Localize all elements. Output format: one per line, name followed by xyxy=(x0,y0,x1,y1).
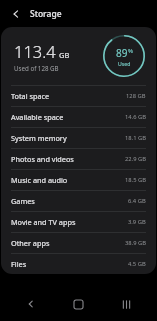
staticText: 18.1 GB xyxy=(125,134,146,142)
staticText: GB xyxy=(59,50,70,60)
staticText: 89 xyxy=(116,46,128,60)
button[interactable]: Movie and TV apps xyxy=(1,212,156,232)
staticText: 4.5 GB xyxy=(128,260,146,268)
staticText: System memory xyxy=(11,133,125,143)
button[interactable]: Back xyxy=(18,291,44,317)
staticText: Games xyxy=(11,196,128,206)
button[interactable]: Photos and videos xyxy=(1,149,156,169)
staticText: Movie and TV apps xyxy=(11,217,128,227)
staticText: 38.9 GB xyxy=(125,239,146,247)
staticText: 22.9 GB xyxy=(125,155,146,163)
staticText: 113.4 xyxy=(14,40,56,62)
staticText: 6.4 GB xyxy=(128,197,146,205)
button[interactable]: Other apps xyxy=(1,233,156,253)
staticText: Used xyxy=(118,60,131,67)
staticText: 18.5 GB xyxy=(125,176,146,184)
staticText: 3.9 GB xyxy=(128,218,146,226)
button[interactable]: Total space xyxy=(1,86,156,106)
staticText: Photos and videos xyxy=(11,154,125,164)
staticText: Used of 128 GB xyxy=(14,64,59,72)
staticText: Available space xyxy=(11,112,125,122)
staticText: Music and audio xyxy=(11,175,125,185)
button[interactable]: Files xyxy=(1,254,156,274)
staticText: % xyxy=(128,47,133,55)
button[interactable]: Music and audio xyxy=(1,170,156,190)
staticText: Total space xyxy=(11,91,126,101)
staticText: Files xyxy=(11,259,128,269)
staticText: 128 GB xyxy=(126,92,146,100)
button[interactable]: Recent apps xyxy=(113,291,139,317)
button[interactable]: Home xyxy=(65,291,91,317)
button[interactable]: Games xyxy=(1,191,156,211)
button[interactable]: Back xyxy=(8,6,24,22)
button[interactable]: Available space xyxy=(1,107,156,127)
staticText: Storage xyxy=(30,8,62,20)
staticText: 14.6 GB xyxy=(125,113,146,121)
button[interactable]: System memory xyxy=(1,128,156,148)
staticText: Other apps xyxy=(11,238,125,248)
